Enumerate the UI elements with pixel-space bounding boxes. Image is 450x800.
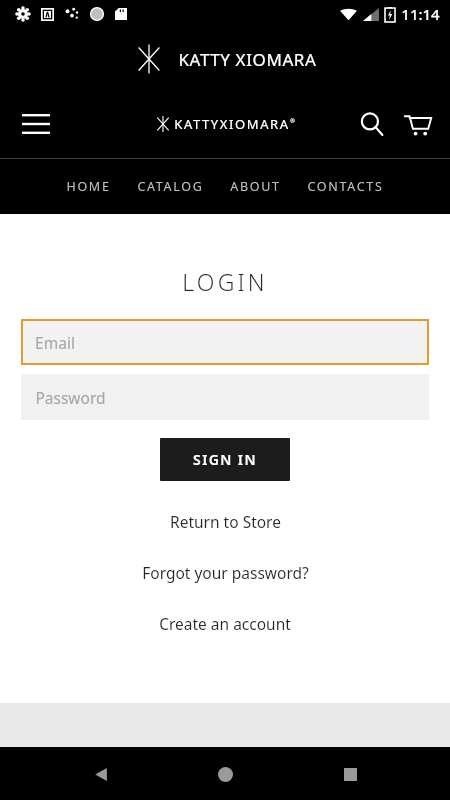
staticText: KATTYXIOMARA bbox=[174, 115, 290, 133]
staticText: SIGN IN bbox=[193, 450, 257, 469]
button[interactable]: CONTACTS bbox=[307, 170, 384, 203]
button[interactable]: Cart bbox=[398, 104, 438, 144]
staticText: 11:14 bbox=[401, 4, 440, 24]
staticText: Forgot your password? bbox=[142, 562, 309, 583]
button[interactable]: Email bbox=[21, 319, 429, 365]
staticText: KATTY XIOMARA bbox=[178, 48, 317, 71]
button[interactable]: ABOUT bbox=[230, 170, 281, 203]
staticText: Return to Store bbox=[170, 511, 281, 532]
button[interactable]: Forgot your password? bbox=[130, 559, 321, 586]
staticText: Password bbox=[35, 387, 106, 408]
staticText: ® bbox=[290, 117, 295, 125]
button[interactable]: Open menu bbox=[14, 102, 58, 146]
button[interactable]: Password bbox=[21, 374, 429, 420]
staticText: HOME bbox=[66, 178, 111, 195]
button[interactable]: Recent apps bbox=[326, 750, 374, 798]
button[interactable]: HOME bbox=[66, 170, 111, 203]
staticText: CATALOG bbox=[137, 178, 204, 195]
button[interactable]: CATALOG bbox=[137, 170, 204, 203]
button[interactable]: Return to Store bbox=[158, 508, 293, 535]
button[interactable]: Search bbox=[352, 104, 392, 144]
staticText: LOGIN bbox=[182, 266, 268, 297]
button[interactable]: Create an account bbox=[147, 610, 303, 637]
staticText: ABOUT bbox=[230, 178, 281, 195]
button[interactable]: SIGN IN bbox=[160, 438, 290, 481]
staticText: CONTACTS bbox=[307, 178, 384, 195]
staticText: Create an account bbox=[159, 613, 291, 634]
staticText: Email bbox=[35, 332, 75, 353]
button[interactable]: Home bbox=[201, 750, 249, 798]
button[interactable]: Back bbox=[77, 750, 125, 798]
